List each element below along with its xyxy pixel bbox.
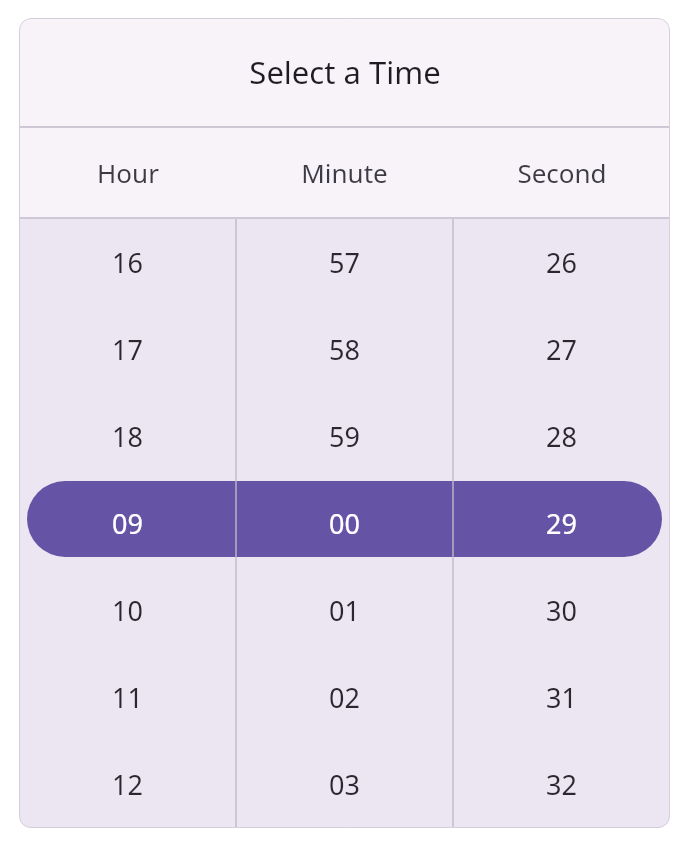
button[interactable]: Select a Time	[19, 18, 670, 126]
staticText: Hour	[97, 155, 159, 190]
button[interactable]: 02	[236, 654, 453, 741]
button[interactable]: 28	[453, 393, 670, 480]
staticText: 29	[546, 505, 577, 542]
button[interactable]: 30	[453, 567, 670, 654]
staticText: 26	[546, 244, 577, 281]
staticText: 32	[546, 766, 577, 803]
button[interactable]: 32	[453, 741, 670, 828]
button[interactable]: 26	[453, 219, 670, 306]
button[interactable]: Minute	[236, 128, 453, 217]
staticText: 18	[112, 418, 143, 455]
button[interactable]: 09	[19, 480, 236, 567]
staticText: Minute	[301, 155, 388, 190]
button[interactable]: 58	[236, 306, 453, 393]
staticText: 12	[112, 766, 143, 803]
button[interactable]: Second	[453, 128, 670, 217]
button[interactable]: 29	[453, 480, 670, 567]
staticText: 11	[112, 679, 143, 716]
button[interactable]: 59	[236, 393, 453, 480]
button[interactable]: 01	[236, 567, 453, 654]
button[interactable]: 18	[19, 393, 236, 480]
staticText: 09	[112, 505, 143, 542]
button[interactable]: 00	[236, 480, 453, 567]
staticText: Second	[517, 155, 607, 190]
button[interactable]: 27	[453, 306, 670, 393]
staticText: 30	[546, 592, 577, 629]
button[interactable]: 03	[236, 741, 453, 828]
staticText: 03	[329, 766, 360, 803]
staticText: Select a Time	[249, 51, 441, 93]
staticText: 00	[329, 505, 360, 542]
staticText: 17	[112, 331, 143, 368]
staticText: 16	[112, 244, 143, 281]
button[interactable]: 17	[19, 306, 236, 393]
staticText: 31	[546, 679, 577, 716]
button[interactable]: 16	[19, 219, 236, 306]
button[interactable]: 10	[19, 567, 236, 654]
staticText: 28	[546, 418, 577, 455]
staticText: 57	[329, 244, 360, 281]
staticText: 01	[329, 592, 360, 629]
staticText: 02	[329, 679, 360, 716]
staticText: 27	[546, 331, 577, 368]
button[interactable]: 57	[236, 219, 453, 306]
staticText: 58	[329, 331, 360, 368]
button[interactable]: 12	[19, 741, 236, 828]
button[interactable]: 31	[453, 654, 670, 741]
staticText: 10	[112, 592, 143, 629]
button[interactable]: 11	[19, 654, 236, 741]
staticText: 59	[329, 418, 360, 455]
button[interactable]: Hour	[19, 128, 236, 217]
